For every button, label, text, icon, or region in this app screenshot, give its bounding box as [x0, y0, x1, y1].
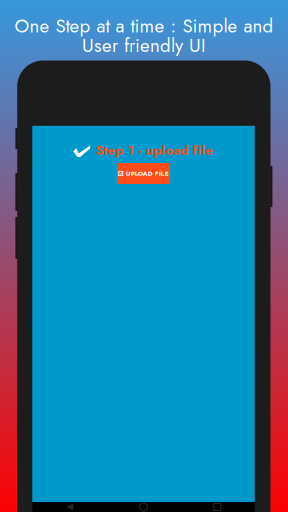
staticText: User friendly UI [82, 32, 206, 59]
staticText: One Step at a time : Simple and [14, 12, 273, 39]
button[interactable]: UPLOAD FILE [117, 163, 170, 184]
staticText: Step 1 - upload file [95, 140, 213, 160]
staticText: UPLOAD FILE [126, 169, 169, 178]
